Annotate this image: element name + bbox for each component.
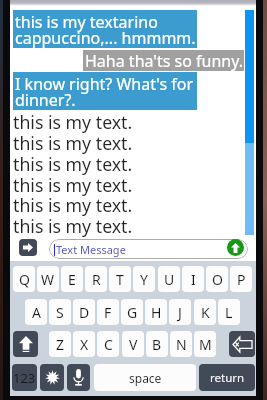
staticText: J: [178, 303, 182, 322]
button[interactable]: Y: [133, 266, 155, 292]
staticText: T: [116, 270, 124, 289]
button[interactable]: Text Message: [49, 239, 248, 259]
staticText: A: [32, 303, 41, 322]
staticText: dinner?.: [15, 89, 76, 111]
button[interactable]: this is my textarino: [13, 10, 197, 48]
button[interactable]: V: [122, 331, 144, 357]
staticText: this is my text.: [13, 110, 133, 134]
staticText: return: [210, 370, 245, 386]
button[interactable]: J: [169, 299, 191, 325]
staticText: N: [176, 335, 187, 354]
button[interactable]: R: [85, 266, 107, 292]
button[interactable]: I: [182, 266, 204, 292]
button[interactable]: Shift: [13, 331, 38, 357]
staticText: I know right? What's for: [15, 73, 194, 95]
staticText: U: [164, 270, 175, 289]
staticText: cappuccino,... hmmmm.: [15, 27, 196, 49]
staticText: M: [199, 335, 212, 354]
button[interactable]: Emoji: [40, 364, 64, 391]
button[interactable]: Z: [49, 331, 71, 357]
button[interactable]: space: [94, 364, 196, 391]
button[interactable]: G: [121, 299, 143, 325]
button[interactable]: Send: [227, 239, 244, 256]
button[interactable]: F: [97, 299, 119, 325]
staticText: this is my text.: [13, 193, 133, 217]
staticText: Text Message: [56, 242, 126, 257]
staticText: P: [237, 270, 246, 289]
staticText: Haha tha'ts so funny.: [85, 50, 244, 71]
staticText: this is my textarino: [15, 11, 158, 33]
button[interactable]: B: [146, 331, 168, 357]
staticText: S: [56, 303, 64, 322]
button[interactable]: U: [158, 266, 180, 292]
button[interactable]: K: [194, 299, 216, 325]
staticText: R: [92, 270, 101, 289]
button[interactable]: E: [61, 266, 83, 292]
staticText: C: [104, 335, 113, 354]
staticText: this is my text.: [13, 235, 133, 259]
staticText: Q: [19, 270, 30, 289]
staticText: K: [201, 303, 210, 322]
button[interactable]: L: [218, 299, 240, 325]
staticText: B: [152, 335, 162, 354]
button[interactable]: W: [37, 266, 59, 292]
staticText: this is my text.: [13, 214, 133, 238]
staticText: V: [129, 335, 138, 354]
button[interactable]: C: [97, 331, 119, 357]
button[interactable]: return: [199, 364, 255, 391]
staticText: G: [127, 303, 138, 322]
button[interactable]: N: [170, 331, 192, 357]
button[interactable]: Attach: [19, 239, 37, 256]
button[interactable]: A: [25, 299, 47, 325]
staticText: E: [68, 270, 76, 289]
staticText: L: [225, 303, 233, 322]
staticText: this is my text.: [13, 173, 133, 197]
staticText: X: [80, 335, 89, 354]
button[interactable]: Voice input: [67, 364, 90, 391]
staticText: space: [129, 370, 162, 386]
staticText: 123: [13, 369, 36, 387]
staticText: D: [79, 303, 90, 322]
staticText: this is my text.: [13, 152, 133, 176]
button[interactable]: S: [49, 299, 71, 325]
button[interactable]: X: [73, 331, 95, 357]
staticText: F: [104, 303, 112, 322]
button[interactable]: Backspace: [229, 331, 255, 357]
staticText: Y: [140, 270, 148, 289]
staticText: O: [212, 270, 223, 289]
button[interactable]: Haha tha'ts so funny.: [83, 50, 244, 71]
staticText: I: [191, 270, 196, 289]
button[interactable]: P: [230, 266, 252, 292]
staticText: W: [41, 270, 55, 289]
staticText: Z: [56, 335, 65, 354]
staticText: this is my text.: [13, 131, 133, 155]
button[interactable]: H: [145, 299, 167, 325]
button[interactable]: 123: [12, 364, 37, 391]
button[interactable]: I know right? What's for: [13, 72, 197, 110]
button[interactable]: M: [194, 331, 216, 357]
staticText: H: [151, 303, 162, 322]
button[interactable]: O: [206, 266, 228, 292]
button[interactable]: T: [109, 266, 131, 292]
button[interactable]: D: [73, 299, 95, 325]
button[interactable]: Q: [13, 266, 35, 292]
